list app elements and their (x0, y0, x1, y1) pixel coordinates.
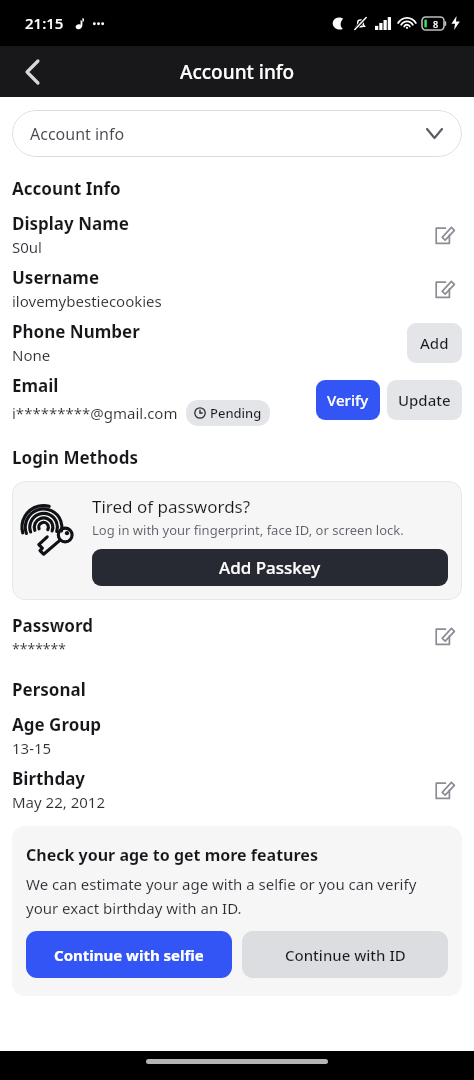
button[interactable]: Pending (186, 400, 270, 426)
staticText: Continue with selfie (54, 945, 204, 965)
button[interactable]: Edit (428, 218, 462, 252)
staticText: None (12, 345, 51, 365)
staticText: Email (12, 374, 59, 397)
button[interactable]: Continue with ID (242, 931, 448, 978)
staticText: Tired of passwords? (92, 495, 251, 518)
button[interactable]: Edit (428, 272, 462, 306)
staticText: Age Group (12, 713, 102, 736)
button[interactable]: Update (387, 380, 462, 420)
staticText: 21:15 (25, 13, 64, 33)
staticText: Password (12, 614, 93, 637)
button[interactable]: Account info (12, 110, 462, 157)
button[interactable]: Add Passkey (92, 549, 448, 586)
staticText: Verify (327, 390, 369, 410)
staticText: S0ul (12, 237, 42, 257)
staticText: Account info (180, 59, 295, 85)
staticText: Add Passkey (219, 556, 321, 579)
staticText: Continue with ID (285, 945, 406, 965)
staticText: i*********@gmail.com (12, 403, 178, 423)
button[interactable]: Verify (316, 380, 380, 420)
staticText: Birthday (12, 767, 86, 790)
staticText: Pending (210, 404, 262, 422)
button[interactable]: Back (10, 50, 54, 94)
staticText: Update (398, 390, 451, 410)
staticText: Add (420, 333, 449, 353)
staticText: Personal (12, 678, 86, 701)
staticText: We can estimate your age with a selfie o… (26, 874, 448, 918)
staticText: 8 (433, 18, 439, 30)
staticText: ilovemybestiecookies (12, 291, 162, 311)
button[interactable]: Continue with selfie (26, 931, 232, 978)
staticText: Check your age to get more features (26, 844, 318, 866)
staticText: Display Name (12, 212, 129, 235)
staticText: 13-15 (12, 738, 52, 758)
staticText: May 22, 2012 (12, 792, 105, 812)
staticText: Log in with your fingerprint, face ID, o… (92, 521, 404, 539)
button[interactable]: Edit (428, 773, 462, 807)
staticText: Account info (30, 123, 125, 145)
staticText: Username (12, 266, 100, 289)
button[interactable]: Add (407, 323, 462, 363)
staticText: Account Info (12, 177, 121, 200)
staticText: ******* (12, 639, 66, 658)
button[interactable]: Edit (428, 619, 462, 653)
staticText: Login Methods (12, 446, 138, 469)
staticText: Phone Number (12, 320, 140, 343)
